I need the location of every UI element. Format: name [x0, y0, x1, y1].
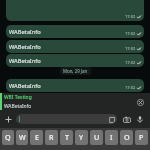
staticText: I [110, 132, 113, 142]
staticText: WBI Testing [4, 94, 32, 101]
button[interactable]: Attach [3, 114, 14, 125]
staticText: 17:02 [125, 31, 136, 36]
staticText: WABetaInfo [9, 82, 41, 90]
staticText: U [94, 132, 100, 142]
button[interactable]: T [60, 130, 73, 145]
staticText: WABetaInfo [9, 57, 41, 65]
staticText: P [139, 132, 144, 142]
staticText: WABetaInfo [4, 103, 32, 110]
button[interactable]: Y [75, 130, 88, 145]
button[interactable]: WBI Testing [0, 93, 150, 110]
button[interactable]: Camera [121, 114, 132, 125]
button[interactable]: Stickers [107, 115, 116, 124]
button[interactable]: U [90, 130, 103, 145]
button[interactable]: Stickers [16, 114, 117, 124]
staticText: 17:02 [125, 46, 136, 51]
staticText: E [35, 132, 39, 142]
staticText: 17:02 [125, 85, 136, 90]
staticText: Q [5, 132, 11, 142]
button[interactable]: 17:02 [6, 0, 144, 21]
button[interactable]: WABetaInfo [6, 79, 144, 92]
staticText: R [49, 132, 54, 142]
staticText: T [65, 132, 69, 142]
button[interactable]: R [45, 130, 58, 145]
staticText: Mon, 29 Jan [63, 68, 88, 74]
button[interactable]: I [105, 130, 118, 145]
button[interactable]: Voice message [134, 114, 145, 125]
button[interactable]: P [135, 130, 148, 145]
button[interactable]: Cancel reply [135, 97, 145, 107]
button[interactable]: Mon, 29 Jan [63, 68, 88, 74]
staticText: WABetaInfo [9, 28, 41, 36]
button[interactable]: W [16, 130, 28, 145]
staticText: Y [79, 132, 84, 142]
staticText: WABetaInfo [9, 43, 41, 51]
button[interactable]: Q [2, 130, 14, 145]
staticText: 17:02 [125, 14, 136, 19]
staticText: W [19, 132, 26, 142]
button[interactable]: E [30, 130, 43, 145]
button[interactable]: WABetaInfo [6, 54, 144, 67]
button[interactable]: WABetaInfo [6, 40, 144, 53]
staticText: O [124, 132, 130, 142]
staticText: 17:02 [125, 60, 136, 65]
button[interactable]: WABetaInfo [6, 25, 144, 38]
button[interactable]: O [120, 130, 133, 145]
